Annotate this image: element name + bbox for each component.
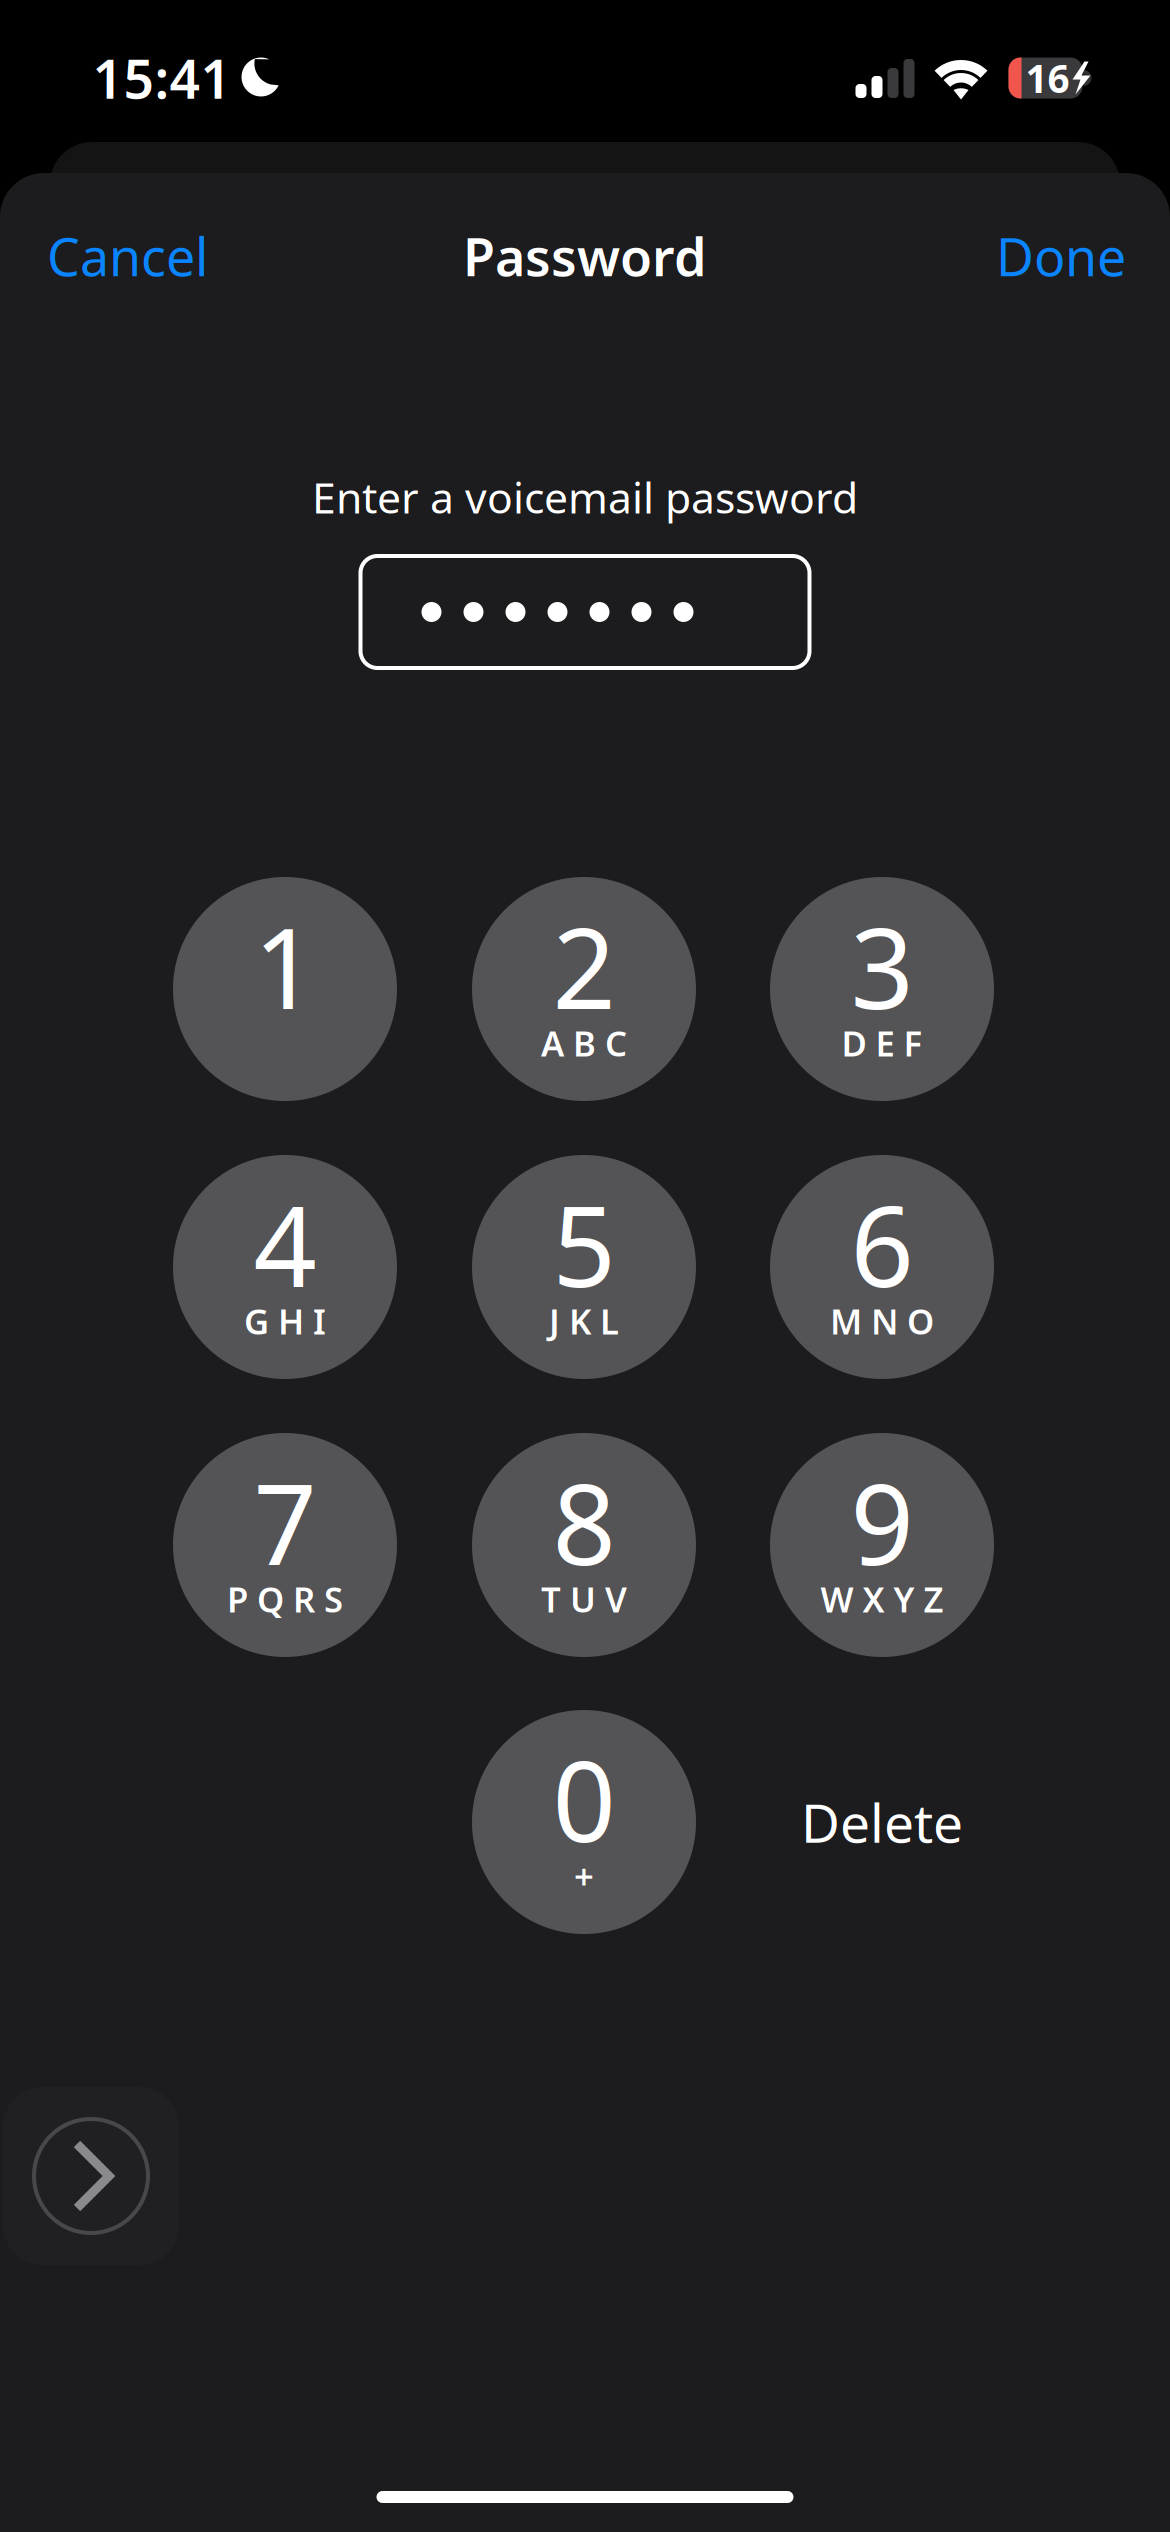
- staticText: 2: [552, 892, 615, 1039]
- button[interactable]: 4: [173, 1155, 397, 1379]
- button[interactable]: 6: [770, 1155, 994, 1379]
- button[interactable]: 3: [770, 877, 994, 1101]
- staticText: 0: [552, 1725, 615, 1872]
- button[interactable]: Delete: [770, 1710, 994, 1934]
- staticText: Delete: [801, 1787, 963, 1857]
- staticText: Done: [996, 221, 1126, 291]
- staticText: T U V: [541, 1576, 627, 1622]
- staticText: 4: [253, 1170, 316, 1317]
- staticText: 16: [1025, 52, 1069, 104]
- button[interactable]: 2: [472, 877, 696, 1101]
- staticText: M N O: [830, 1298, 934, 1344]
- staticText: G H I: [244, 1298, 326, 1344]
- staticText: +: [574, 1853, 594, 1899]
- staticText: 5: [552, 1170, 615, 1317]
- button[interactable]: 1: [173, 877, 397, 1101]
- staticText: P Q R S: [227, 1576, 343, 1622]
- button[interactable]: Done: [946, 208, 1126, 304]
- button[interactable]: 5: [472, 1155, 696, 1379]
- staticText: 1: [253, 892, 316, 1039]
- button[interactable]: 7: [173, 1433, 397, 1657]
- staticText: 9: [850, 1448, 913, 1595]
- staticText: 8: [552, 1448, 615, 1595]
- staticText: 6: [850, 1170, 913, 1317]
- button[interactable]: 0: [472, 1710, 696, 1934]
- staticText: Cancel: [47, 221, 208, 291]
- staticText: Password: [463, 221, 707, 291]
- button[interactable]: 8: [472, 1433, 696, 1657]
- staticText: A B C: [541, 1020, 627, 1066]
- staticText: J K L: [549, 1298, 619, 1344]
- staticText: W X Y Z: [820, 1576, 943, 1622]
- button[interactable]: Cancel: [47, 208, 267, 304]
- staticText: 7: [253, 1448, 316, 1595]
- staticText: 3: [850, 892, 913, 1039]
- staticText: 15:41: [92, 43, 231, 113]
- staticText: Enter a voicemail password: [312, 469, 858, 525]
- staticText: D E F: [841, 1020, 922, 1066]
- button[interactable]: [3, 2087, 179, 2265]
- button[interactable]: 9: [770, 1433, 994, 1657]
